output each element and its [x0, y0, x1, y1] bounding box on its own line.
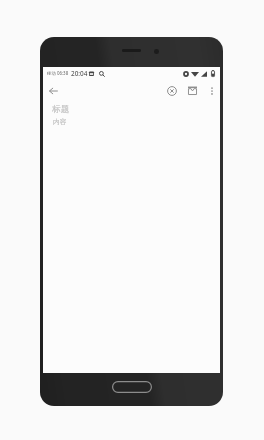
staticText: 移动 06:38	[47, 70, 69, 76]
staticText: 20:04	[71, 69, 88, 78]
button[interactable]: More options	[204, 83, 219, 98]
staticText: 内容	[53, 117, 67, 126]
button[interactable]: Home	[112, 381, 152, 393]
button[interactable]: Cancel	[164, 83, 179, 98]
button[interactable]: Back	[46, 83, 61, 98]
button[interactable]: Save	[185, 83, 200, 98]
staticText: 标题	[52, 104, 70, 115]
